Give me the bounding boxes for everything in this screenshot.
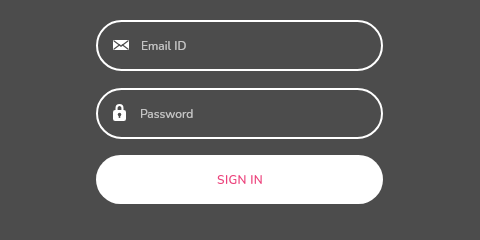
staticText: Email ID bbox=[141, 38, 187, 54]
other: Password bbox=[113, 104, 126, 121]
button[interactable]: Email bbox=[96, 20, 383, 71]
other: Email bbox=[113, 40, 129, 50]
button[interactable]: Password bbox=[96, 88, 383, 139]
staticText: SIGN IN bbox=[217, 172, 263, 188]
staticText: Password bbox=[140, 106, 194, 122]
button[interactable]: SIGN IN bbox=[96, 155, 383, 204]
